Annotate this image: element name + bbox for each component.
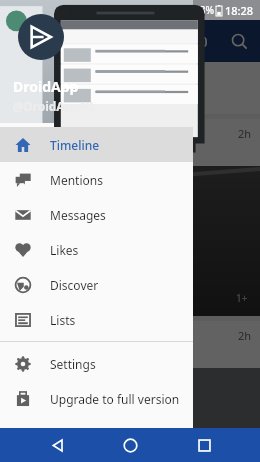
staticText: Discover bbox=[50, 277, 99, 293]
staticText: Trike bbox=[8, 69, 36, 84]
staticText: Likes bbox=[50, 242, 79, 258]
button[interactable]: Back bbox=[40, 428, 74, 462]
staticText: Lists bbox=[50, 312, 76, 328]
button[interactable]: Upgrade to full version bbox=[0, 381, 193, 416]
staticText: 2h bbox=[238, 126, 252, 141]
staticText: 18:28 bbox=[225, 3, 254, 18]
button[interactable]: Discover bbox=[0, 267, 193, 302]
button[interactable]: Search bbox=[226, 28, 252, 54]
button[interactable]: Messages bbox=[0, 197, 193, 232]
button[interactable]: Timeline bbox=[0, 127, 193, 162]
staticText: 2h bbox=[238, 328, 252, 343]
staticText: Mentions bbox=[50, 172, 103, 188]
button[interactable]: OnePlus bbox=[0, 119, 260, 166]
button[interactable]: 1+ bbox=[0, 166, 260, 316]
button[interactable]: Settings bbox=[0, 346, 193, 381]
staticText: DroidApp bbox=[13, 77, 79, 96]
button[interactable]: Home bbox=[113, 428, 147, 462]
staticText: 0 bbox=[199, 31, 208, 51]
staticText: Upgrade to full version bbox=[50, 391, 180, 407]
button[interactable]: Mentions bbox=[0, 162, 193, 197]
button[interactable]: Lists bbox=[0, 302, 193, 337]
button[interactable]: Likes bbox=[0, 232, 193, 267]
staticText: OnePlus bbox=[8, 126, 238, 141]
staticText: Settings bbox=[50, 356, 96, 372]
staticText: 38% bbox=[194, 3, 214, 17]
button[interactable]: INSTALLEREN bbox=[8, 89, 88, 107]
staticText: @DroidAppNL bbox=[13, 98, 97, 114]
button[interactable]: an bbox=[0, 321, 260, 368]
button[interactable]: Trike bbox=[0, 62, 260, 114]
staticText: https:// bbox=[8, 144, 46, 159]
staticText: an bbox=[8, 328, 238, 343]
staticText: INSTALLEREN bbox=[18, 92, 78, 104]
staticText: 1+ bbox=[236, 291, 248, 305]
staticText: Messages bbox=[50, 207, 106, 223]
staticText: - http:// bbox=[8, 346, 48, 361]
button[interactable]: Recent apps bbox=[187, 428, 221, 462]
staticText: Timeline bbox=[50, 137, 100, 153]
button[interactable]: DroidApp bbox=[0, 0, 193, 123]
